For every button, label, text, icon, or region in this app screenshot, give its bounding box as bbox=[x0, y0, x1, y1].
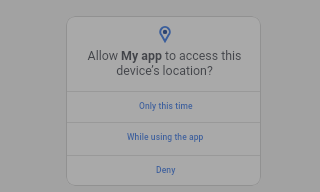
button[interactable]: Only this time bbox=[68, 90, 261, 121]
button[interactable]: Deny bbox=[68, 155, 261, 185]
staticText: Only this time bbox=[139, 101, 193, 111]
staticText: Deny bbox=[156, 165, 176, 175]
staticText: Allow My app to access this device’s loc… bbox=[67, 48, 261, 78]
button[interactable]: While using the app bbox=[68, 121, 261, 153]
staticText: While using the app bbox=[127, 132, 204, 142]
